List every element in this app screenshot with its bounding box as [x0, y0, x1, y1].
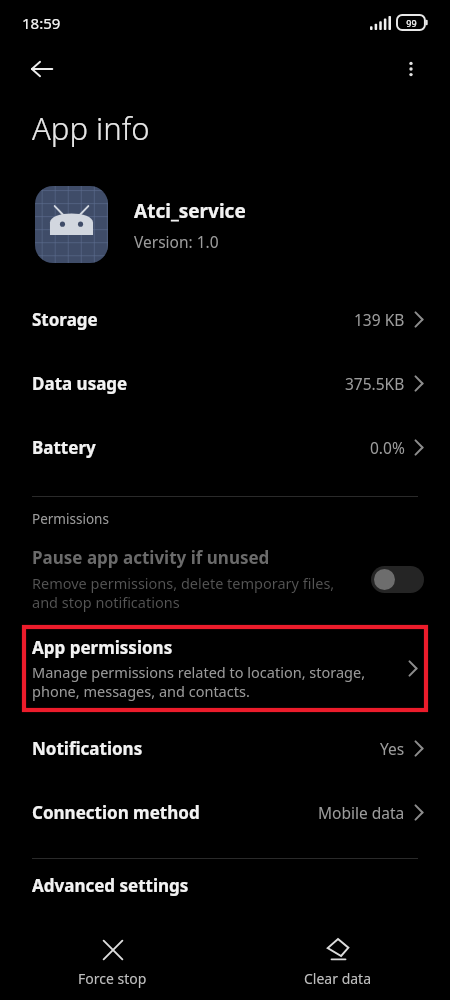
- button[interactable]: More options: [389, 47, 433, 91]
- button[interactable]: Force stop: [0, 931, 225, 994]
- button[interactable]: Storage: [0, 287, 450, 351]
- staticText: Storage: [32, 308, 354, 331]
- button[interactable]: App permissions: [24, 627, 426, 710]
- staticText: Notifications: [32, 737, 380, 760]
- staticText: Data usage: [32, 372, 345, 395]
- staticText: Connection method: [32, 801, 318, 824]
- staticText: 99: [406, 17, 417, 29]
- button[interactable]: Pause app activity toggle: [371, 566, 424, 593]
- staticText: 139 KB: [354, 309, 405, 330]
- button[interactable]: Pause app activity if unused: [0, 537, 450, 621]
- staticText: Yes: [380, 738, 405, 759]
- staticText: Manage permissions related to location, …: [32, 662, 398, 701]
- staticText: Clear data: [304, 969, 372, 988]
- staticText: Advanced settings: [32, 874, 189, 897]
- button[interactable]: Data usage: [0, 351, 450, 415]
- staticText: Mobile data: [318, 802, 405, 823]
- staticText: 18:59: [22, 13, 61, 33]
- staticText: Battery: [32, 436, 370, 459]
- staticText: Pause app activity if unused: [32, 546, 270, 569]
- staticText: App permissions: [32, 636, 173, 659]
- button[interactable]: Notifications: [0, 716, 450, 780]
- staticText: Version: 1.0: [134, 231, 219, 252]
- staticText: 375.5KB: [345, 373, 405, 394]
- staticText: Force stop: [78, 969, 147, 988]
- staticText: Remove permissions, delete temporary fil…: [32, 573, 363, 612]
- button[interactable]: Connection method: [0, 780, 450, 844]
- staticText: 0.0%: [370, 437, 405, 458]
- staticText: Permissions: [32, 510, 109, 528]
- staticText: App info: [32, 107, 150, 149]
- staticText: Atci_service: [134, 198, 246, 224]
- button[interactable]: Battery: [0, 415, 450, 479]
- button[interactable]: Back: [18, 45, 66, 93]
- button[interactable]: Clear data: [225, 931, 450, 994]
